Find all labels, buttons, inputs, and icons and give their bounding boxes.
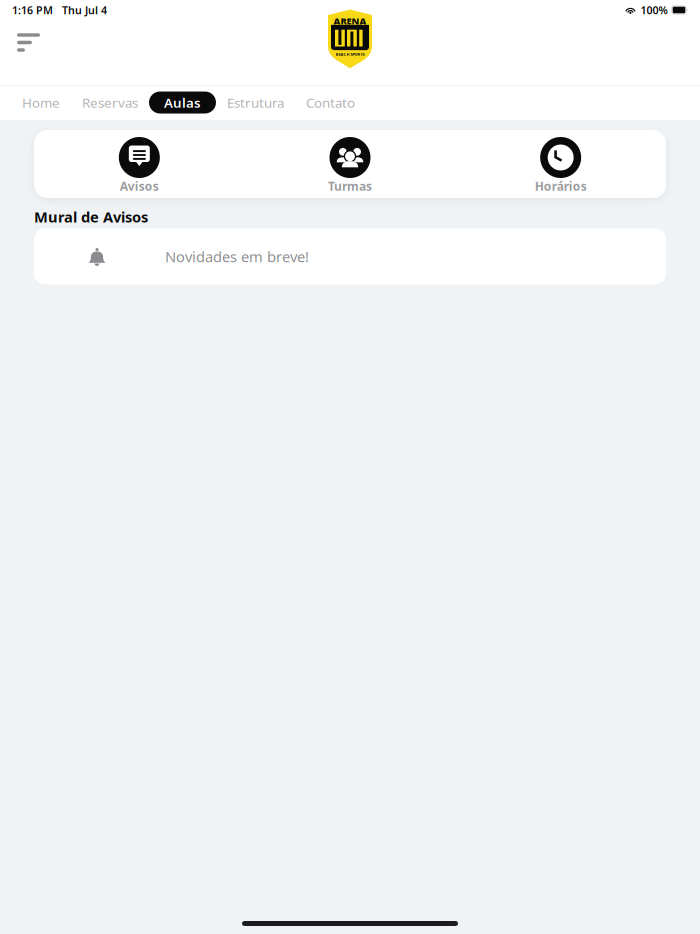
button[interactable]: Home bbox=[11, 91, 71, 113]
button[interactable]: Aulas bbox=[149, 91, 216, 113]
staticText: Avisos bbox=[120, 178, 159, 194]
staticText: Estrutura bbox=[227, 94, 284, 111]
staticText: Novidades em breve! bbox=[165, 247, 309, 266]
staticText: 1:16 PM bbox=[12, 3, 53, 17]
staticText: Horários bbox=[535, 178, 587, 194]
button[interactable]: Estrutura bbox=[216, 91, 295, 113]
button[interactable]: Menu bbox=[0, 32, 54, 72]
button[interactable]: Turmas bbox=[245, 130, 455, 198]
button[interactable]: Avisos bbox=[34, 130, 245, 198]
staticText: Mural de Avisos bbox=[34, 207, 148, 226]
staticText: Thu Jul 4 bbox=[62, 3, 107, 17]
button[interactable]: Reservas bbox=[71, 91, 149, 113]
button[interactable]: Horários bbox=[455, 130, 666, 198]
staticText: Home bbox=[22, 94, 60, 111]
staticText: Contato bbox=[306, 94, 355, 111]
staticText: Reservas bbox=[82, 94, 138, 111]
button[interactable]: Contato bbox=[295, 91, 366, 113]
staticText: Aulas bbox=[164, 94, 201, 111]
staticText: ARENA bbox=[333, 15, 366, 27]
staticText: 100% bbox=[640, 3, 667, 17]
staticText: Turmas bbox=[328, 178, 372, 194]
staticText: BEACH SPORTS bbox=[335, 51, 364, 57]
